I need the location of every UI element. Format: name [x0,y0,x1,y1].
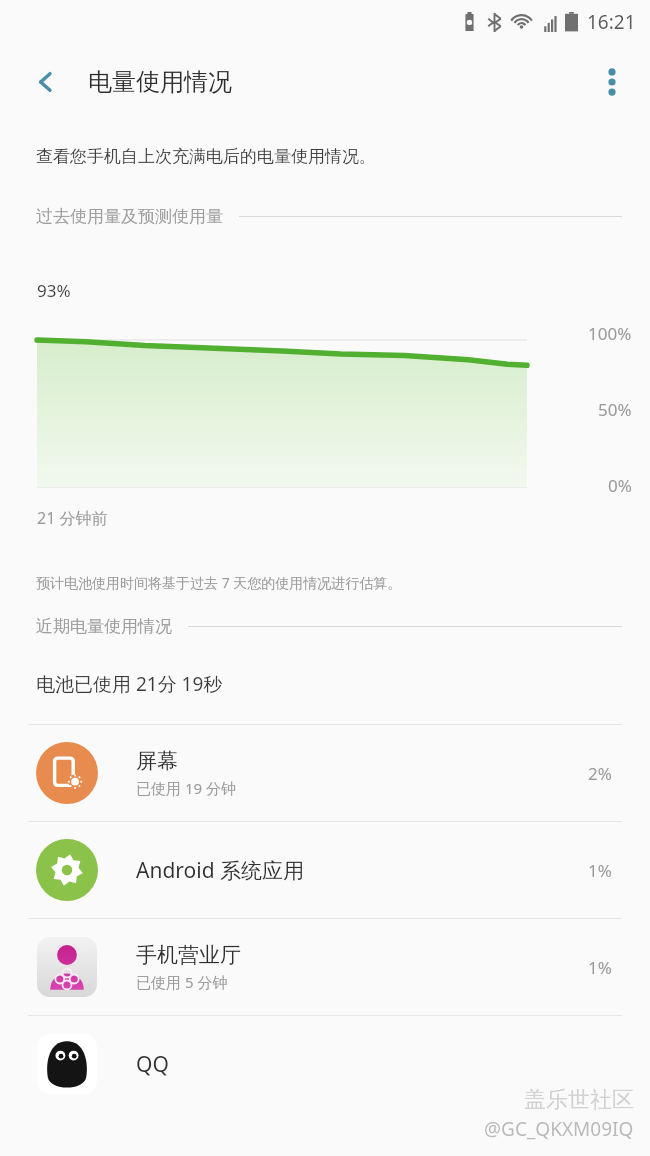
button[interactable]: 手机营业厅 [0,919,650,1015]
button[interactable]: More options [588,58,636,106]
staticText: 0% [608,474,632,497]
staticText: 手机营业厅 [136,942,241,968]
staticText: 预计电池使用时间将基于过去 7 天您的使用情况进行估算。 [36,573,402,592]
staticText: QQ [136,1050,169,1079]
staticText: @GC_QKXM09IQ [484,1116,634,1142]
staticText: 16:21 [587,9,636,35]
staticText: 近期电量使用情况 [36,616,172,637]
button[interactable]: Back [22,58,70,106]
staticText: 已使用 19 分钟 [136,778,236,798]
staticText: 盖乐世社区 [524,1086,634,1114]
staticText: 1% [588,859,612,882]
staticText: 电量使用情况 [88,67,232,97]
button[interactable]: Android 系统应用 [0,822,650,918]
staticText: Android 系统应用 [136,856,305,885]
staticText: 1% [588,956,612,979]
staticText: 100% [588,322,632,345]
staticText: 查看您手机自上次充满电后的电量使用情况。 [36,146,376,167]
staticText: 50% [598,398,632,421]
staticText: 屏幕 [136,748,178,774]
staticText: 2% [588,762,612,785]
button[interactable]: 屏幕 [0,725,650,821]
staticText: 已使用 5 分钟 [136,972,228,992]
button[interactable]: QQ [0,1016,650,1112]
staticText: 93% [37,279,71,302]
staticText: 电池已使用 21分 19秒 [36,671,223,697]
staticText: 21 分钟前 [37,507,108,529]
staticText: 过去使用量及预测使用量 [36,206,223,227]
